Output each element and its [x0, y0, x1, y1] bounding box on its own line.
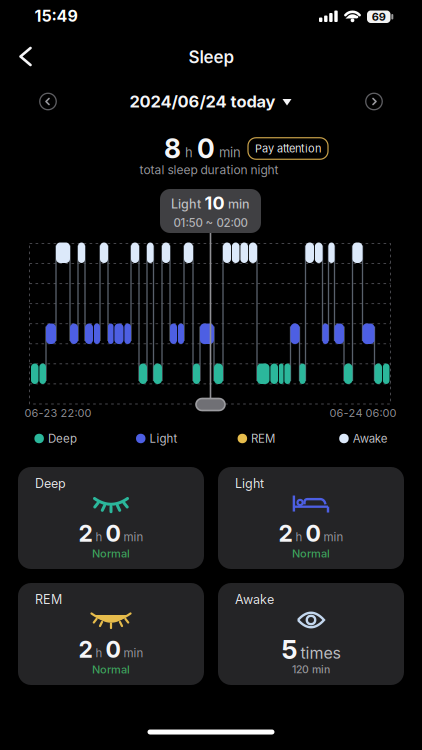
staticText: Normal: [92, 547, 130, 560]
staticText: min: [123, 646, 143, 660]
staticText: Normal: [292, 547, 330, 560]
staticText: min: [123, 530, 143, 544]
staticText: 0: [305, 520, 320, 547]
staticText: total sleep duration night: [139, 163, 278, 177]
button[interactable]: Awake: [218, 583, 404, 685]
staticText: Light: [149, 431, 177, 445]
staticText: 69: [372, 10, 386, 23]
staticText: Normal: [92, 663, 130, 676]
button[interactable]: Next day: [360, 88, 387, 115]
staticText: 5: [281, 634, 297, 665]
staticText: 8: [164, 132, 181, 165]
staticText: 0: [105, 520, 120, 547]
button[interactable]: Time selector: [196, 398, 225, 410]
button[interactable]: Pay attention: [248, 138, 328, 159]
staticText: h: [95, 530, 102, 544]
button[interactable]: 2024/06/24 today: [129, 91, 291, 111]
staticText: Awake: [353, 431, 388, 445]
staticText: h: [295, 530, 302, 544]
staticText: 120 min: [292, 663, 330, 676]
staticText: h: [185, 145, 193, 160]
staticText: REM: [35, 592, 62, 607]
button[interactable]: REM: [18, 583, 204, 685]
staticText: REM: [251, 431, 275, 445]
staticText: 0: [105, 636, 120, 663]
staticText: 2: [78, 636, 92, 663]
staticText: Light: [171, 196, 201, 212]
button[interactable]: Deep: [18, 467, 204, 569]
button[interactable]: Light: [218, 467, 404, 569]
staticText: 06-23 22:00: [24, 406, 91, 420]
staticText: 10: [204, 192, 224, 214]
button[interactable]: Previous day: [34, 88, 61, 115]
staticText: Pay attention: [255, 142, 321, 155]
staticText: 15:49: [34, 6, 77, 26]
staticText: 06-24 06:00: [329, 406, 396, 420]
staticText: Sleep: [188, 47, 234, 67]
staticText: 01:50 ~ 02:00: [173, 216, 247, 230]
staticText: Light: [235, 476, 264, 491]
staticText: Awake: [235, 592, 274, 607]
staticText: 2: [278, 520, 292, 547]
staticText: 2: [78, 520, 92, 547]
staticText: min: [219, 145, 241, 160]
staticText: min: [228, 196, 250, 212]
staticText: min: [323, 530, 343, 544]
staticText: Deep: [48, 431, 77, 445]
staticText: h: [95, 646, 102, 660]
staticText: times: [300, 643, 340, 663]
staticText: 2024/06/24 today: [129, 91, 275, 111]
button[interactable]: Back: [15, 43, 35, 70]
staticText: 0: [197, 132, 215, 165]
staticText: Deep: [35, 476, 66, 491]
